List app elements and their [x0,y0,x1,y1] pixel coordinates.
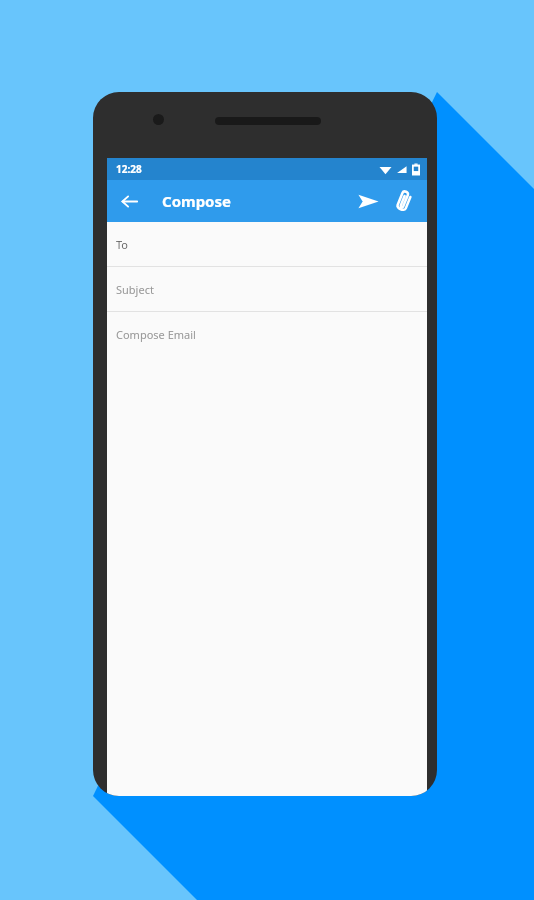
staticText: Compose Email [116,327,196,342]
button[interactable]: Send [351,184,385,218]
button[interactable]: Compose Email [107,312,427,356]
staticText: 12:28 [116,162,142,176]
staticText: Compose [162,191,231,211]
button[interactable]: Attach file [387,184,421,218]
button[interactable]: Subject [107,267,427,311]
staticText: Subject [116,282,154,297]
button[interactable]: Back [113,185,145,217]
button[interactable]: To [107,222,427,266]
staticText: To [116,237,129,252]
